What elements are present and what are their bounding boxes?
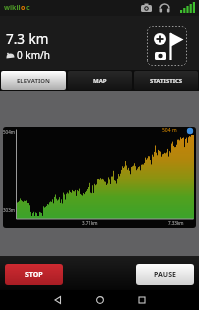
button[interactable]: PAUSE [136,264,194,285]
staticText: 7.3 km [6,30,49,48]
button[interactable]: STOP [5,264,63,285]
staticText: MAP [93,77,107,85]
staticText: 303m [3,207,15,213]
staticText: o [21,3,26,13]
staticText: STATISTICS [150,77,183,85]
button[interactable]: MAP [68,71,132,90]
staticText: STOP [25,270,43,280]
staticText: 504 m [162,127,177,134]
staticText: 3.71km [82,220,98,226]
button[interactable]: STATISTICS [134,71,198,90]
staticText: 7.33km [168,220,184,226]
staticText: 504m [3,129,15,135]
staticText: ELEVATION [17,77,50,85]
button[interactable] [37,290,79,310]
staticText: 0 km/h [17,48,50,62]
staticText: PAUSE [154,270,176,280]
staticText: wikil [4,3,21,13]
button[interactable] [147,26,187,66]
staticText: c [26,3,30,13]
button[interactable] [121,290,163,310]
button[interactable]: ELEVATION [1,71,66,90]
button[interactable] [79,290,121,310]
